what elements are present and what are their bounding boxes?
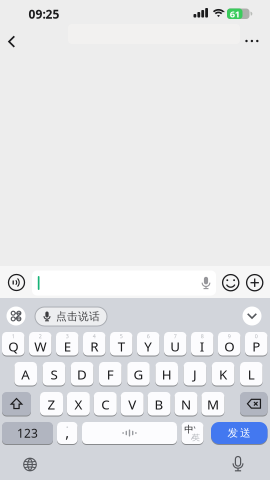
staticText: E	[64, 337, 71, 355]
staticText: 9	[228, 333, 231, 340]
staticText: 4	[93, 333, 96, 340]
staticText: G	[133, 365, 143, 383]
staticText: 61	[230, 8, 240, 20]
staticText: 0	[255, 333, 258, 340]
staticText: L	[248, 365, 255, 383]
staticText: 1	[12, 333, 15, 340]
staticText: S	[50, 365, 57, 383]
staticText: M	[207, 395, 219, 413]
staticText: J	[193, 365, 197, 383]
staticText: 7	[174, 333, 177, 340]
staticText: A	[21, 365, 30, 383]
staticText: 中	[184, 424, 193, 435]
staticText: T	[118, 337, 125, 355]
staticText: 09:25	[28, 6, 59, 22]
staticText: Y	[144, 337, 152, 355]
staticText: C	[101, 395, 109, 413]
staticText: Q	[8, 337, 18, 355]
staticText: N	[181, 395, 191, 413]
staticText: H	[162, 365, 172, 383]
staticText: 5	[120, 333, 123, 340]
staticText: D	[77, 365, 87, 383]
staticText: K	[219, 365, 227, 383]
staticText: O	[224, 337, 234, 355]
staticText: 6	[147, 333, 150, 340]
staticText: 点击说话	[56, 310, 100, 323]
staticText: 2	[39, 333, 42, 340]
staticText: 8	[201, 333, 204, 340]
staticText: 发	[227, 426, 238, 439]
staticText: ,	[65, 422, 69, 442]
staticText: F	[107, 365, 114, 383]
staticText: W	[34, 337, 46, 355]
staticText: I	[200, 337, 205, 355]
staticText: B	[155, 395, 164, 413]
staticText: U	[170, 337, 180, 355]
staticText: 123	[17, 425, 38, 441]
staticText: P	[252, 337, 260, 355]
staticText: X	[74, 395, 82, 413]
staticText: 英	[192, 433, 200, 442]
staticText: R	[90, 337, 98, 355]
staticText: 3	[66, 333, 69, 340]
staticText: 送	[240, 426, 251, 439]
staticText: Z	[47, 395, 55, 413]
staticText: V	[128, 395, 136, 413]
